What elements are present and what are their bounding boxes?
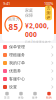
staticText: 保单管理: [9, 44, 25, 49]
staticText: 9:41: [3, 1, 10, 6]
staticText: 家庭保障: [25, 8, 33, 18]
button[interactable]: 客服中心: [0, 75, 56, 83]
staticText: 服务: [32, 96, 38, 99]
staticText: 首页: [4, 96, 10, 99]
staticText: 客服中心: [9, 76, 25, 81]
staticText: 85: [8, 22, 18, 32]
staticText: 100%: [44, 1, 53, 6]
button[interactable]: 我的: [42, 91, 56, 100]
staticText: ¥2,000,000: [25, 21, 49, 39]
staticText: 我的订单: [9, 60, 25, 65]
staticText: 设置: [9, 84, 17, 89]
button[interactable]: 我的订单: [0, 59, 56, 67]
staticText: 去测评: [46, 5, 50, 20]
button[interactable]: 首页: [0, 91, 14, 100]
staticText: 理赔服务: [9, 52, 25, 57]
button[interactable]: 理赔服务: [0, 51, 56, 59]
button[interactable]: 保险: [14, 91, 28, 100]
button[interactable]: 优惠券: [0, 67, 56, 75]
staticText: 优惠券: [9, 68, 21, 73]
staticText: 已有3份保障生效中: [25, 40, 51, 43]
staticText: 保障力: [7, 17, 19, 22]
staticText: 保险: [18, 96, 24, 99]
staticText: 我的: [46, 96, 52, 99]
button[interactable]: 服务: [28, 91, 42, 100]
button[interactable]: 保单管理: [0, 43, 56, 51]
button[interactable]: 设置: [0, 83, 56, 91]
